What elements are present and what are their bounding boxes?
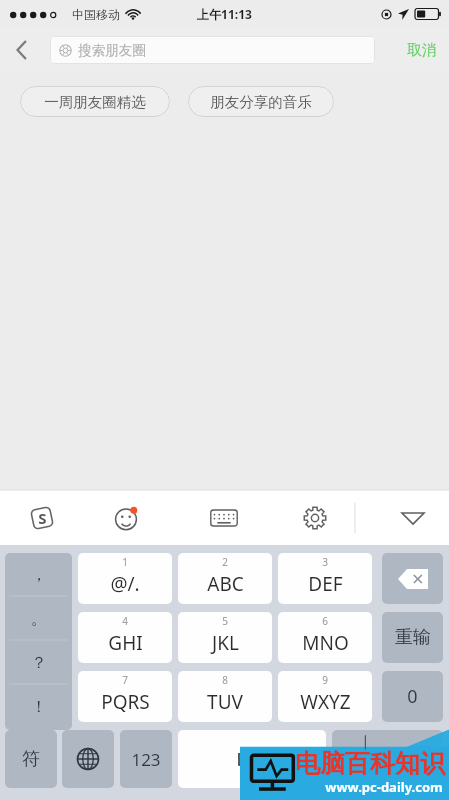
staticText: GHI (108, 630, 143, 656)
staticText: 9 (322, 673, 328, 687)
button[interactable]: Sogou (22, 498, 62, 538)
staticText: WXYZ (300, 689, 351, 715)
staticText: TUV (207, 689, 243, 715)
staticText: 0 (407, 684, 418, 709)
staticText: ， (31, 565, 47, 585)
button[interactable]: 朋友分享的音乐 (188, 86, 334, 117)
button[interactable]: Backspace (382, 553, 443, 604)
staticText: ！ (31, 697, 47, 717)
staticText: 符 (22, 748, 40, 771)
button[interactable]: 5 (178, 612, 272, 663)
staticText: 重输 (395, 626, 431, 649)
staticText: 123 (131, 748, 161, 771)
button[interactable]: 6 (278, 612, 372, 663)
staticText: 5 (222, 614, 228, 628)
button[interactable]: Back (0, 28, 44, 72)
staticText: 上午11:13 (197, 6, 252, 22)
button[interactable]: 。 (5, 597, 72, 641)
button[interactable]: Space (178, 730, 326, 788)
button[interactable]: 4 (78, 612, 172, 663)
staticText: PQRS (101, 689, 150, 715)
button[interactable]: Enter (332, 730, 443, 788)
staticText: 搜索朋友圈 (78, 42, 146, 59)
button[interactable]: 0 (382, 671, 443, 722)
staticText: 6 (322, 614, 328, 628)
staticText: 4 (122, 614, 128, 628)
staticText: @/. (110, 571, 140, 597)
staticText: 电脑百科知识 (295, 748, 445, 779)
button[interactable]: Settings (294, 497, 336, 539)
staticText: 3 (322, 555, 328, 569)
button[interactable]: Language (62, 730, 114, 788)
staticText: 7 (122, 673, 128, 687)
staticText: 中国移动 (72, 7, 120, 22)
button[interactable]: 7 (78, 671, 172, 722)
staticText: 。 (31, 609, 47, 629)
button[interactable]: 一周朋友圈精选 (20, 86, 170, 117)
button[interactable]: 2 (178, 553, 272, 604)
staticText: www.pc-daily.com (325, 778, 443, 796)
staticText: DEF (308, 571, 343, 597)
staticText: 2 (222, 555, 228, 569)
staticText: ABC (207, 571, 244, 597)
button[interactable]: 8 (178, 671, 272, 722)
button[interactable]: 1 (78, 553, 172, 604)
button[interactable]: 重输 (382, 612, 443, 663)
button[interactable]: 123 (120, 730, 172, 788)
staticText: 1 (122, 555, 128, 569)
button[interactable]: ！ (5, 685, 72, 729)
staticText: ？ (31, 653, 47, 673)
staticText: JKL (212, 630, 239, 656)
button[interactable]: 3 (278, 553, 372, 604)
staticText: 朋友分享的音乐 (210, 93, 312, 111)
staticText: 取消 (407, 41, 437, 60)
button[interactable]: 取消 (404, 37, 440, 64)
button[interactable]: ， (5, 553, 72, 597)
button[interactable]: Hide keyboard (391, 496, 435, 540)
staticText: 8 (222, 673, 228, 687)
button[interactable]: Emoji (105, 497, 147, 539)
button[interactable]: Keyboard (203, 497, 245, 539)
button[interactable]: 搜索朋友圈 (50, 36, 375, 64)
staticText: S (38, 508, 47, 528)
staticText: MNO (302, 630, 349, 656)
staticText: 一周朋友圈精选 (44, 93, 146, 111)
button[interactable]: 符 (5, 730, 57, 788)
button[interactable]: 9 (278, 671, 372, 722)
button[interactable]: ？ (5, 641, 72, 685)
